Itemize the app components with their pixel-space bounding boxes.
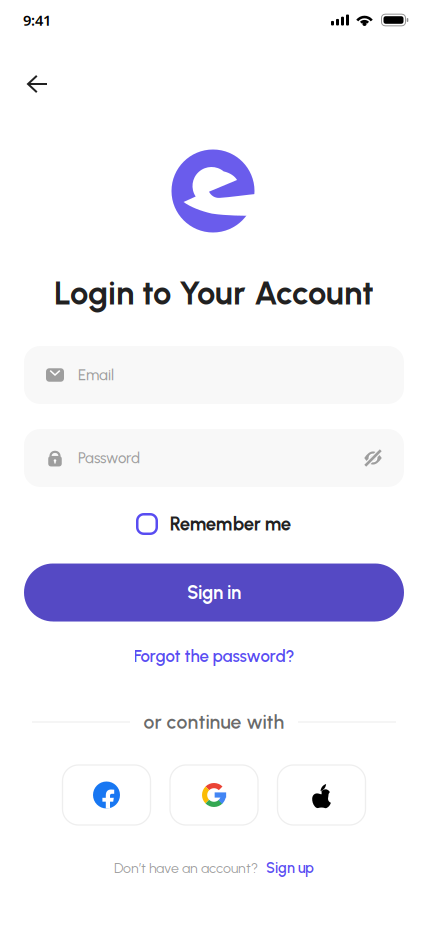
staticText: Login to Your Account	[54, 273, 374, 313]
button[interactable]: Back	[16, 64, 59, 104]
staticText: Password	[78, 449, 140, 467]
button[interactable]: Continue with Google	[170, 765, 258, 825]
button[interactable]: Email	[24, 346, 404, 404]
staticText: Email	[78, 366, 114, 384]
button[interactable]: Forgot the password?	[129, 642, 298, 670]
button[interactable]: Sign in	[24, 563, 404, 621]
staticText: Forgot the password?	[133, 646, 294, 666]
button[interactable]: Continue with Facebook	[62, 765, 150, 825]
button[interactable]: Show password	[363, 448, 383, 468]
staticText: or continue with	[143, 710, 284, 734]
staticText: Don’t have an account?	[114, 859, 258, 876]
staticText: 9:41	[23, 10, 51, 30]
button[interactable]: Sign up	[266, 859, 314, 877]
button[interactable]: Password	[24, 429, 404, 487]
button[interactable]: Remember me	[131, 507, 297, 541]
staticText: Remember me	[170, 513, 291, 535]
button[interactable]: Continue with Apple	[277, 765, 365, 825]
staticText: Sign up	[266, 859, 314, 877]
staticText: Sign in	[187, 581, 241, 604]
